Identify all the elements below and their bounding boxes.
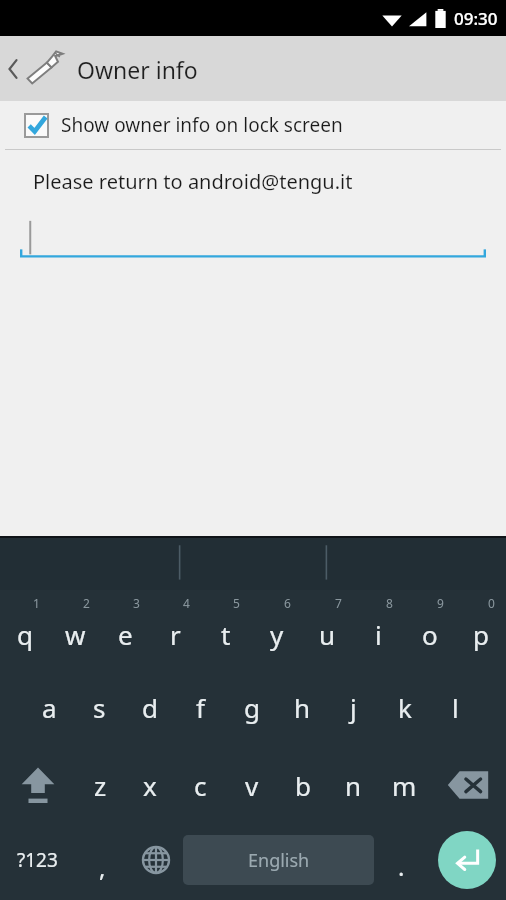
staticText: , bbox=[99, 851, 106, 884]
staticText: w bbox=[65, 617, 86, 652]
staticText: 6 bbox=[284, 595, 291, 611]
staticText: m bbox=[392, 768, 417, 803]
staticText: i bbox=[375, 617, 382, 652]
button[interactable]: Show owner info on lock screen bbox=[0, 101, 506, 149]
button[interactable]: 1 bbox=[0, 590, 50, 668]
staticText: v bbox=[245, 768, 259, 803]
button[interactable]: m bbox=[379, 746, 430, 824]
staticText: l bbox=[452, 690, 459, 725]
button[interactable]: j bbox=[328, 668, 379, 746]
staticText: 8 bbox=[386, 595, 393, 611]
button[interactable] bbox=[20, 217, 486, 265]
staticText: e bbox=[118, 617, 133, 652]
button[interactable]: , bbox=[75, 824, 129, 896]
button[interactable]: b bbox=[277, 746, 328, 824]
staticText: p bbox=[473, 617, 489, 652]
button[interactable]: l bbox=[430, 668, 481, 746]
staticText: 4 bbox=[183, 595, 190, 611]
staticText: j bbox=[350, 690, 357, 725]
staticText: 1 bbox=[33, 595, 40, 611]
staticText: t bbox=[221, 617, 231, 652]
staticText: n bbox=[345, 768, 362, 803]
button[interactable]: Back to settings bbox=[0, 36, 506, 101]
button[interactable]: Enter bbox=[428, 824, 506, 896]
staticText: 0 bbox=[488, 595, 495, 611]
staticText: h bbox=[294, 690, 311, 725]
button[interactable]: Shift bbox=[0, 746, 75, 824]
button[interactable]: n bbox=[328, 746, 379, 824]
staticText: k bbox=[398, 690, 412, 725]
staticText: 2 bbox=[83, 595, 90, 611]
staticText: ?123 bbox=[17, 847, 58, 873]
button[interactable]: h bbox=[277, 668, 328, 746]
button[interactable]: Backspace bbox=[430, 746, 506, 824]
staticText: s bbox=[93, 690, 106, 725]
staticText: English bbox=[248, 848, 310, 873]
button[interactable]: k bbox=[379, 668, 430, 746]
button[interactable]: 7 bbox=[302, 590, 353, 668]
button[interactable]: 0 bbox=[455, 590, 506, 668]
button[interactable]: z bbox=[75, 746, 125, 824]
button[interactable]: f bbox=[175, 668, 226, 746]
button[interactable]: English bbox=[183, 835, 374, 885]
button[interactable]: v bbox=[226, 746, 277, 824]
staticText: r bbox=[170, 617, 181, 652]
staticText: Owner info bbox=[77, 54, 198, 85]
staticText: q bbox=[17, 617, 33, 652]
button[interactable]: 3 bbox=[100, 590, 150, 668]
staticText: 5 bbox=[233, 595, 240, 611]
button[interactable]: c bbox=[175, 746, 226, 824]
button[interactable]: 6 bbox=[251, 590, 302, 668]
staticText: 09:30 bbox=[454, 7, 498, 30]
staticText: a bbox=[42, 690, 57, 725]
staticText: Show owner info on lock screen bbox=[61, 112, 343, 138]
staticText: b bbox=[295, 768, 311, 803]
button[interactable]: d bbox=[124, 668, 175, 746]
staticText: d bbox=[142, 690, 158, 725]
staticText: 3 bbox=[133, 595, 140, 611]
button[interactable]: 2 bbox=[50, 590, 100, 668]
staticText: o bbox=[422, 617, 438, 652]
staticText: y bbox=[270, 617, 284, 652]
button[interactable]: 4 bbox=[150, 590, 200, 668]
button[interactable]: a bbox=[24, 668, 74, 746]
staticText: u bbox=[319, 617, 336, 652]
button[interactable]: ?123 bbox=[0, 824, 75, 896]
staticText: x bbox=[143, 768, 157, 803]
button[interactable]: . bbox=[374, 824, 428, 896]
staticText: z bbox=[94, 768, 107, 803]
button[interactable]: 5 bbox=[200, 590, 251, 668]
staticText: g bbox=[244, 690, 260, 725]
staticText: 7 bbox=[335, 595, 342, 611]
button[interactable]: Change language bbox=[129, 824, 183, 896]
staticText: . bbox=[398, 850, 405, 883]
staticText: 9 bbox=[437, 595, 444, 611]
button[interactable]: 9 bbox=[404, 590, 455, 668]
staticText: f bbox=[196, 690, 205, 725]
button[interactable]: 8 bbox=[353, 590, 404, 668]
staticText: Please return to android@tengu.it bbox=[33, 168, 353, 195]
staticText: c bbox=[194, 768, 207, 803]
button[interactable]: x bbox=[125, 746, 175, 824]
button[interactable]: s bbox=[74, 668, 124, 746]
button[interactable]: g bbox=[226, 668, 277, 746]
